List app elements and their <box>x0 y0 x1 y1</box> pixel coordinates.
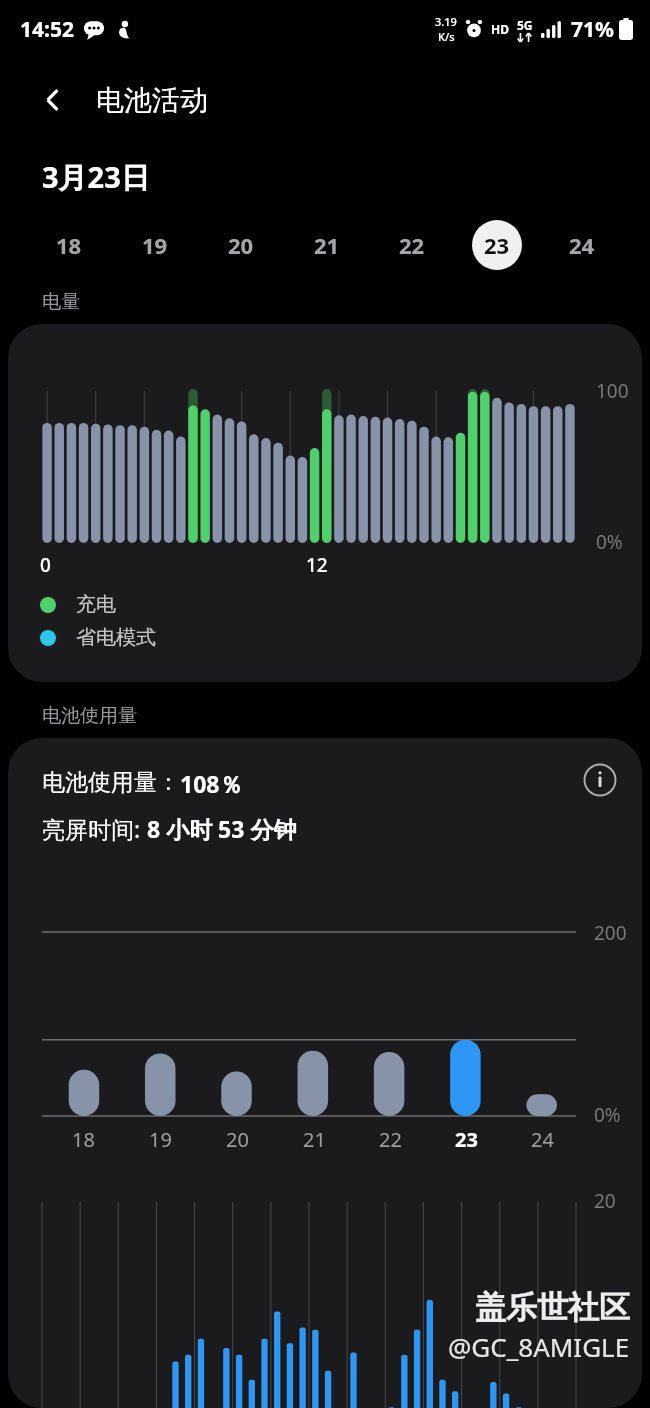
staticText: 3.19 <box>435 14 457 29</box>
staticText: 21 <box>303 1126 326 1153</box>
staticText: 电池活动 <box>96 83 208 118</box>
button[interactable]: 24 <box>539 212 624 278</box>
staticText: K/s <box>438 29 455 44</box>
staticText: 19 <box>149 1126 172 1153</box>
button[interactable]: Back <box>28 75 78 125</box>
staticText: 电量 <box>42 290 80 314</box>
staticText: 20 <box>228 230 254 260</box>
staticText: 充电 <box>76 592 116 617</box>
staticText: HD <box>491 21 509 37</box>
staticText: 0% <box>594 1406 621 1408</box>
staticText: 12 <box>306 552 328 578</box>
staticText: 电池使用量： <box>42 768 180 797</box>
staticText: 100 <box>596 378 629 404</box>
staticText: 22 <box>379 1126 402 1153</box>
button[interactable]: 电池使用量： <box>8 738 642 1408</box>
staticText: 8 小时 53 分钟 <box>147 813 297 844</box>
staticText: 23 <box>455 1126 478 1153</box>
staticText: 0 <box>40 552 51 578</box>
staticText: 3月23日 <box>42 157 150 197</box>
staticText: 省电模式 <box>76 625 156 650</box>
staticText: 亮屏时间: <box>42 813 147 844</box>
staticText: 24 <box>531 1126 554 1153</box>
staticText: 5G <box>517 17 533 33</box>
staticText: 18 <box>56 230 82 260</box>
button[interactable]: 100 <box>8 324 642 682</box>
staticText: 200 <box>594 920 627 946</box>
staticText: 0% <box>594 1102 621 1128</box>
staticText: 14:52 <box>20 15 74 44</box>
button[interactable]: 20 <box>198 212 284 278</box>
button[interactable]: 21 <box>284 212 369 278</box>
staticText: 108％ <box>180 768 243 799</box>
staticText: @GC_8AMIGLE <box>448 1329 630 1364</box>
staticText: 22 <box>399 230 425 260</box>
staticText: 20 <box>226 1126 249 1153</box>
button[interactable]: Info <box>576 756 624 804</box>
staticText: 20 <box>594 1188 616 1214</box>
button[interactable]: 18 <box>26 212 112 278</box>
button[interactable]: 23 <box>454 212 539 278</box>
button[interactable]: 22 <box>369 212 454 278</box>
staticText: 23 <box>484 230 510 260</box>
staticText: 盖乐世社区 <box>475 1288 630 1327</box>
staticText: 18 <box>72 1126 95 1153</box>
staticText: 21 <box>314 230 340 260</box>
staticText: 0% <box>596 529 623 555</box>
staticText: 24 <box>569 230 595 260</box>
staticText: 19 <box>142 230 168 260</box>
staticText: 电池使用量 <box>42 704 137 728</box>
staticText: 71% <box>571 15 614 44</box>
button[interactable]: 19 <box>112 212 198 278</box>
